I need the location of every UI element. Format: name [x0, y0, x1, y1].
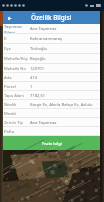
button[interactable]: Mahalle No — [0, 64, 104, 73]
staticText: Kargir Ev, Ahırla Bahçe Ev, Avlulu Kargi… — [30, 102, 101, 108]
button[interactable]: Tapu Alanı — [0, 91, 104, 100]
button[interactable]: Pafta — [0, 127, 104, 136]
staticText: Fazla bilgi — [42, 140, 62, 146]
staticText: Mahalle No — [4, 66, 30, 72]
staticText: Tapu Alanı — [4, 93, 30, 99]
staticText: 474 — [30, 75, 38, 81]
staticText: Özellik Bilgisi — [31, 13, 72, 22]
staticText: Ana Taşınmaz — [30, 120, 57, 126]
button[interactable]: Mahalle/Köy — [0, 54, 104, 64]
staticText: Mahalle/Köy — [4, 56, 30, 62]
staticText: Kahramanmaraş — [30, 36, 62, 42]
button[interactable]: İl — [0, 34, 104, 44]
staticText: Beyoğlu — [30, 56, 46, 62]
button[interactable]: Mevkii — [0, 109, 104, 118]
staticText: İlçe — [4, 46, 30, 52]
staticText: Parsel — [4, 84, 30, 90]
staticText: Nitelik — [4, 102, 30, 108]
staticText: Pafta — [4, 129, 30, 135]
button[interactable]: Zemin Tip — [0, 118, 104, 127]
staticText: Taşınmaz Bilgisi — [4, 24, 30, 34]
button[interactable]: Ada — [0, 73, 104, 82]
staticText: Ana Taşınmaz — [30, 26, 57, 32]
staticText: Türkoğlu — [30, 46, 48, 52]
button[interactable]: İlçe — [0, 44, 104, 54]
staticText: İl — [4, 36, 30, 42]
staticText: 1 — [30, 84, 33, 90]
staticText: Ada — [4, 75, 30, 81]
staticText: 120701 — [30, 66, 45, 72]
staticText: Mevkii — [4, 111, 30, 117]
button[interactable]: Parsel — [0, 82, 104, 91]
staticText: Zemin Tip — [4, 120, 30, 126]
button[interactable]: Geri — [4, 13, 14, 23]
button[interactable]: Fazla bilgi — [0, 136, 104, 150]
button[interactable]: Nitelik — [0, 100, 104, 109]
staticText: 7182,61 — [30, 93, 46, 99]
